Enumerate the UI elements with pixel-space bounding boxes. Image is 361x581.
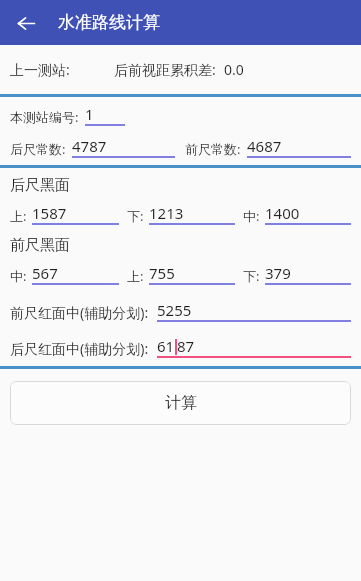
staticText: 上: bbox=[127, 267, 144, 285]
staticText: 后前视距累积差: bbox=[114, 60, 216, 79]
staticText: 后尺常数: bbox=[10, 140, 66, 158]
staticText: 567 bbox=[32, 263, 58, 283]
staticText: 1587 bbox=[32, 203, 67, 223]
staticText: 1400 bbox=[265, 203, 300, 223]
staticText: 1 bbox=[85, 104, 94, 124]
button[interactable]: 4687 bbox=[247, 135, 351, 158]
button[interactable]: 1 bbox=[85, 103, 125, 126]
staticText: 379 bbox=[265, 263, 291, 283]
button[interactable]: 1587 bbox=[32, 202, 119, 225]
staticText: 上一测站: bbox=[10, 60, 70, 79]
staticText: 计算 bbox=[165, 393, 197, 413]
staticText: 4687 bbox=[247, 136, 282, 156]
staticText: 上: bbox=[10, 207, 27, 225]
staticText: 下: bbox=[243, 267, 260, 285]
staticText: 前尺黑面 bbox=[10, 236, 70, 255]
staticText: 前尺常数: bbox=[185, 140, 241, 158]
staticText: 0.0 bbox=[224, 60, 244, 79]
staticText: 后尺黑面 bbox=[10, 176, 70, 195]
staticText: 755 bbox=[149, 263, 175, 283]
staticText: 本测站编号: bbox=[10, 108, 79, 126]
staticText: 4787 bbox=[72, 136, 107, 156]
staticText: 下: bbox=[127, 207, 144, 225]
button[interactable]: 567 bbox=[32, 262, 119, 285]
staticText: 1213 bbox=[149, 203, 184, 223]
button[interactable]: 4787 bbox=[72, 135, 175, 158]
button[interactable]: 379 bbox=[265, 262, 351, 285]
button[interactable]: 1400 bbox=[265, 202, 351, 225]
staticText: 中: bbox=[10, 267, 27, 285]
staticText: 水准路线计算 bbox=[58, 12, 160, 33]
button[interactable]: 1213 bbox=[149, 202, 235, 225]
button[interactable]: 755 bbox=[149, 262, 235, 285]
staticText: 61 bbox=[157, 336, 175, 356]
button[interactable]: Back bbox=[8, 5, 44, 41]
staticText: 中: bbox=[243, 207, 260, 225]
staticText: 5255 bbox=[157, 300, 192, 320]
staticText: 87 bbox=[177, 336, 195, 356]
button[interactable]: 61 bbox=[157, 335, 351, 358]
button[interactable]: 5255 bbox=[157, 299, 351, 322]
staticText: 前尺红面中(辅助分划): bbox=[10, 303, 149, 322]
staticText: 后尺红面中(辅助分划): bbox=[10, 339, 149, 358]
button[interactable]: 计算 bbox=[10, 381, 351, 425]
